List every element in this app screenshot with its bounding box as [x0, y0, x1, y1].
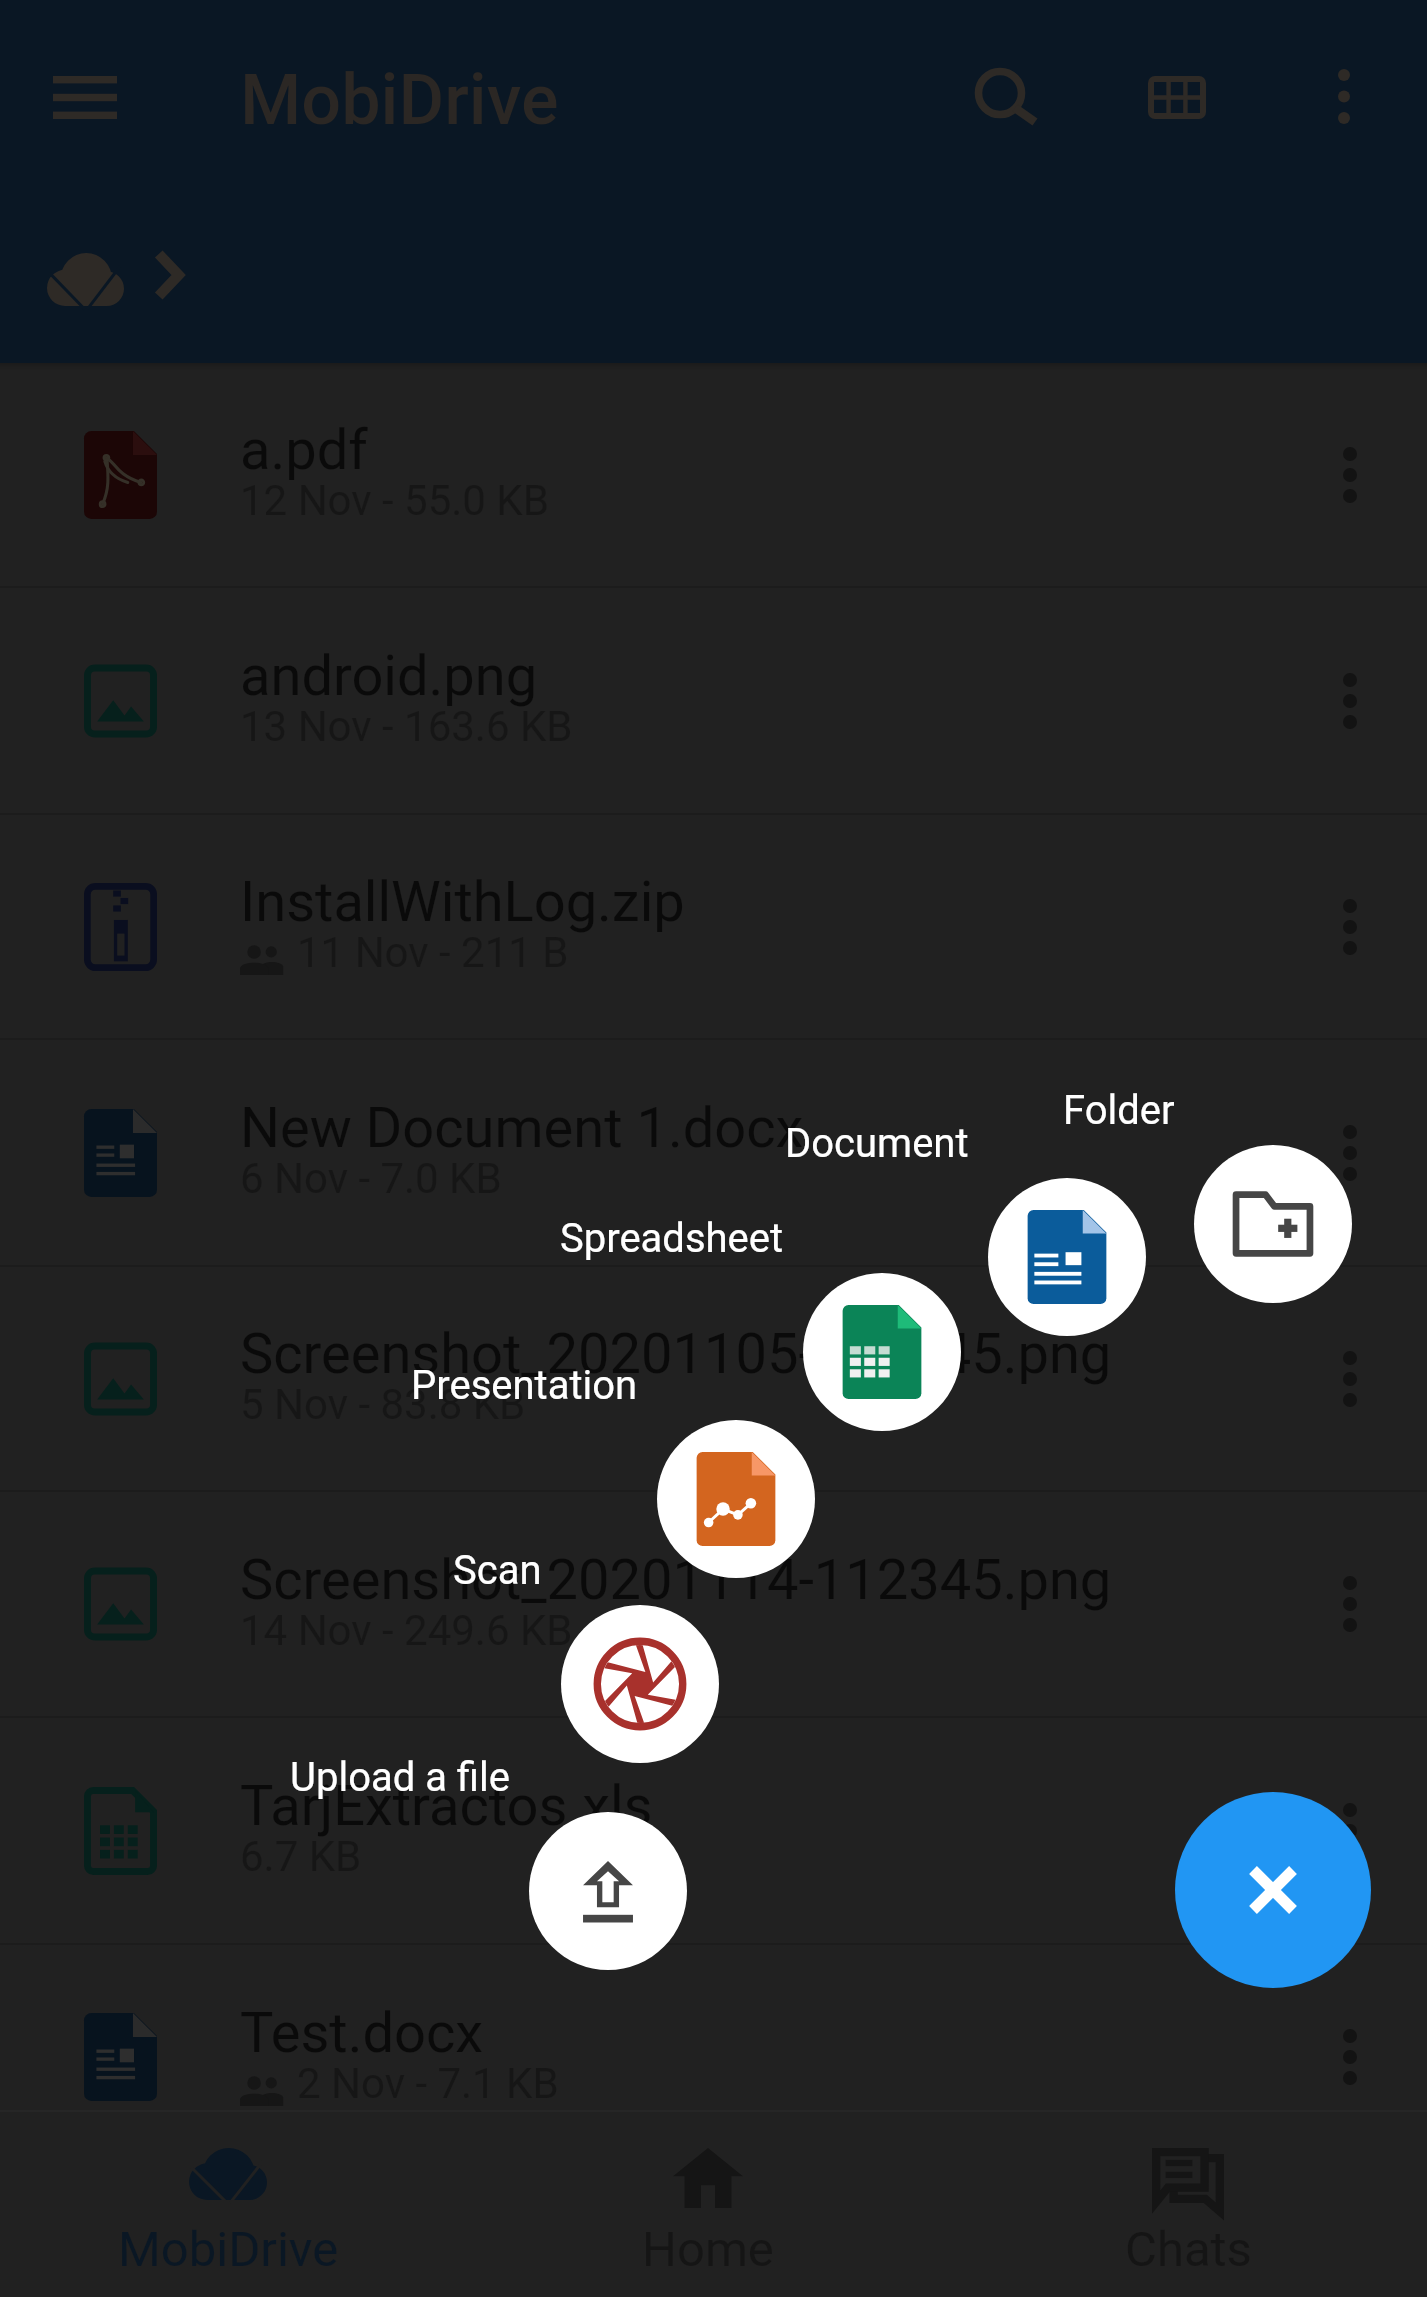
button[interactable]: Folder [1194, 1145, 1352, 1303]
staticText: Screenshot_20201114-112345.png [240, 1547, 1112, 1613]
button[interactable]: MobiDrive root [47, 253, 124, 306]
button[interactable]: New Document 1.docx [0, 1040, 1427, 1265]
button[interactable]: More options for Test.docx [1273, 1945, 1427, 2169]
button[interactable]: Switch to grid view [1107, 27, 1247, 167]
staticText: Upload a file [290, 1754, 510, 1801]
button[interactable]: Folder [1063, 1087, 1175, 1134]
button[interactable]: Upload a file [529, 1812, 687, 1970]
button[interactable]: Screenshot_20201105-113945.png [0, 1267, 1427, 1490]
button[interactable]: Breadcrumb [153, 250, 185, 300]
button[interactable]: More options for Screenshot_20201105-113… [1273, 1267, 1427, 1490]
staticText: Folder [1063, 1087, 1175, 1134]
button[interactable]: More options for TarjExtractos.xls [1273, 1718, 1427, 1943]
staticText: MobiDrive [118, 2221, 339, 2278]
staticText: InstallWithLog.zip [240, 869, 685, 935]
staticText: New Document 1.docx [240, 1095, 804, 1161]
staticText: Document [785, 1120, 969, 1167]
staticText: 5 Nov - 83.8 KB [240, 1380, 526, 1429]
button[interactable]: More options [1274, 26, 1414, 166]
button[interactable]: Scan [561, 1605, 719, 1763]
staticText: 6 Nov - 7.0 KB [240, 1154, 502, 1203]
button[interactable]: Upload a file [290, 1754, 510, 1801]
staticText: android.png [240, 643, 538, 709]
button[interactable]: Document [785, 1120, 969, 1167]
button[interactable]: Open navigation drawer [15, 27, 155, 167]
button[interactable]: Document [988, 1178, 1146, 1336]
staticText: 11 Nov - 211 B [297, 928, 569, 977]
button[interactable]: More options for New Document 1.docx [1273, 1040, 1427, 1265]
staticText: Scan [453, 1547, 542, 1594]
button[interactable]: Screenshot_20201114-112345.png [0, 1492, 1427, 1716]
button[interactable]: Close create menu [1175, 1792, 1371, 1988]
staticText: Presentation [411, 1362, 638, 1409]
button[interactable]: TarjExtractos.xls [0, 1718, 1427, 1943]
button[interactable]: Spreadsheet [560, 1215, 784, 1262]
staticText: 14 Nov - 249.6 KB [240, 1606, 573, 1655]
staticText: 12 Nov - 55.0 KB [240, 476, 549, 525]
staticText: Screenshot_20201105-113945.png [240, 1321, 1112, 1387]
staticText: Spreadsheet [560, 1215, 784, 1262]
staticText: Home [642, 2221, 774, 2278]
button[interactable]: Presentation [411, 1362, 638, 1409]
button[interactable]: MobiDrive [0, 2110, 466, 2297]
staticText: Test.docx [240, 2000, 484, 2066]
staticText: TarjExtractos.xls [240, 1773, 653, 1839]
staticText: 2 Nov - 7.1 KB [297, 2059, 559, 2108]
button[interactable]: Test.docx [0, 1945, 1427, 2169]
staticText: a.pdf [240, 417, 368, 483]
staticText: 13 Nov - 163.6 KB [240, 702, 573, 751]
button[interactable]: InstallWithLog.zip [0, 815, 1427, 1038]
button[interactable]: Search [936, 26, 1076, 166]
button[interactable]: a.pdf [0, 363, 1427, 586]
staticText: 6.7 KB [240, 1832, 362, 1881]
button[interactable]: Presentation [657, 1420, 815, 1578]
button[interactable]: android.png [0, 588, 1427, 813]
button[interactable]: Scan [453, 1547, 542, 1594]
staticText: MobiDrive [240, 59, 559, 141]
staticText: Chats [1125, 2221, 1252, 2278]
button[interactable]: Spreadsheet [803, 1273, 961, 1431]
